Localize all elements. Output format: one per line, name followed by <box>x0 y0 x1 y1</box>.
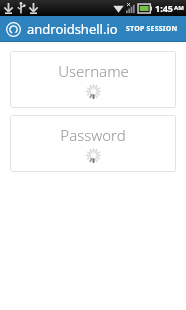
staticText: androidshell.io <box>27 20 118 38</box>
staticText: Username <box>58 61 129 81</box>
staticText: AM <box>174 4 184 12</box>
button[interactable]: Username <box>10 51 176 108</box>
staticText: STOP SESSION <box>126 24 178 34</box>
button[interactable]: androidshell.io logo <box>5 21 22 38</box>
button[interactable]: Password <box>10 115 176 172</box>
staticText: 1:45 <box>155 2 173 14</box>
staticText: Password <box>60 125 126 145</box>
button[interactable]: STOP SESSION <box>123 20 181 38</box>
